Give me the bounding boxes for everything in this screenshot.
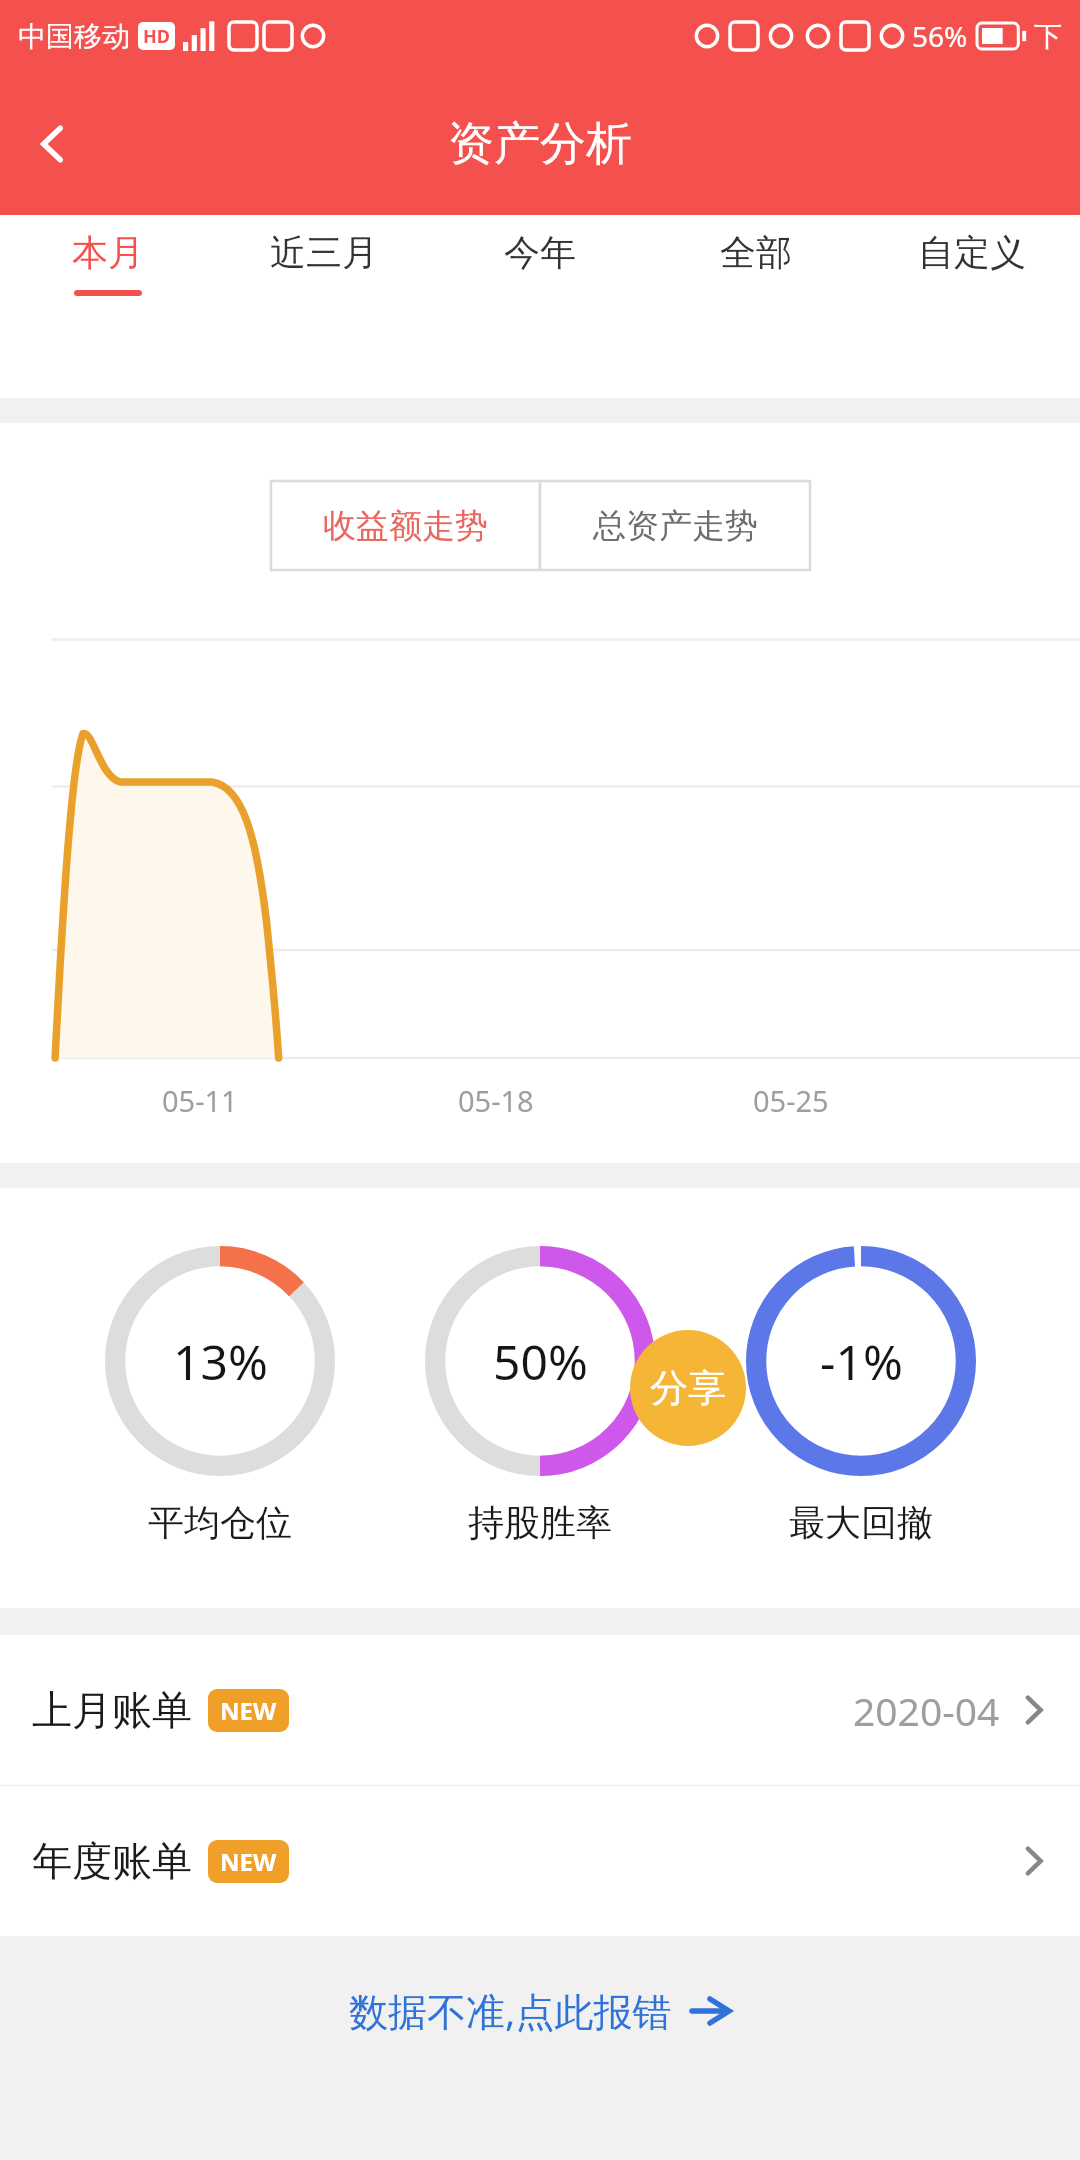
- staticText: 收益额走势: [323, 505, 488, 547]
- staticText: 05-11: [162, 1081, 238, 1120]
- button[interactable]: 近三月: [216, 215, 432, 310]
- staticText: 数据不准,点此报错: [349, 1984, 672, 2037]
- staticText: 持股胜率: [468, 1500, 612, 1545]
- button[interactable]: 数据不准,点此报错: [349, 1984, 732, 2037]
- staticText: 自定义: [918, 230, 1026, 275]
- staticText: 全部: [720, 230, 792, 275]
- staticText: 56%: [912, 17, 968, 55]
- staticText: 总资产走势: [593, 505, 758, 547]
- staticText: 最大回撤: [789, 1500, 933, 1545]
- staticText: 2020-04: [853, 1684, 1000, 1737]
- staticText: 50%: [493, 1329, 588, 1394]
- staticText: NEW: [220, 1845, 277, 1878]
- button[interactable]: 总资产走势: [540, 481, 810, 570]
- button[interactable]: 分享: [630, 1330, 746, 1446]
- staticText: 05-25: [753, 1081, 829, 1120]
- staticText: -1%: [820, 1329, 903, 1394]
- staticText: 05-18: [458, 1081, 534, 1120]
- staticText: 本月: [72, 230, 144, 275]
- staticText: 上月账单: [32, 1685, 192, 1735]
- staticText: NEW: [220, 1694, 277, 1727]
- button[interactable]: 全部: [648, 215, 864, 310]
- staticText: 近三月: [270, 230, 378, 275]
- staticText: HD: [143, 24, 170, 49]
- button[interactable]: 自定义: [864, 215, 1080, 310]
- button[interactable]: Back: [8, 99, 98, 189]
- button[interactable]: 上月账单: [0, 1635, 1080, 1785]
- staticText: 平均仓位: [148, 1500, 292, 1545]
- staticText: 分享: [650, 1364, 726, 1412]
- staticText: 年度账单: [32, 1836, 192, 1886]
- button[interactable]: 收益额走势: [271, 481, 540, 570]
- staticText: 资产分析: [448, 115, 632, 173]
- button[interactable]: 本月: [0, 215, 216, 310]
- staticText: 中国移动: [18, 19, 130, 54]
- button[interactable]: 年度账单: [0, 1786, 1080, 1936]
- button[interactable]: 今年: [432, 215, 648, 310]
- staticText: 下: [1034, 19, 1062, 54]
- staticText: 13%: [173, 1329, 268, 1394]
- staticText: 今年: [504, 230, 576, 275]
